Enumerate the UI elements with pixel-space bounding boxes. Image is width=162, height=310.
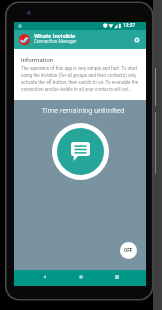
staticText: Whats Invisible	[34, 32, 76, 39]
button[interactable]: OFF	[120, 242, 137, 259]
staticText: 12:37	[123, 23, 136, 29]
staticText: OFF	[124, 248, 133, 253]
button[interactable]: Recents	[110, 270, 123, 283]
staticText: Time remaining unlimited	[17, 106, 149, 114]
button[interactable]: Back	[38, 270, 51, 283]
staticText: Information	[21, 56, 54, 63]
button[interactable]: Settings	[129, 32, 144, 47]
staticText: Connection Manager	[34, 39, 77, 44]
staticText: The operation of this app is very simple…	[21, 66, 140, 93]
button[interactable]: Home	[74, 270, 87, 283]
button[interactable]: Toggle invisible	[52, 123, 109, 180]
